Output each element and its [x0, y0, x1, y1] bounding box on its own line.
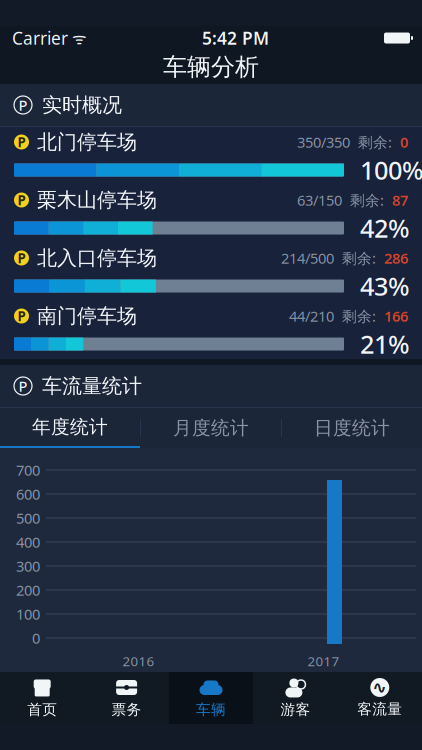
staticText: 100% [360, 153, 422, 187]
staticText: 43% [360, 269, 410, 303]
staticText: 车流量统计 [42, 374, 142, 398]
staticText: 2017 [307, 652, 339, 670]
button[interactable]: 年度统计 [0, 408, 140, 448]
button[interactable]: 月度统计 [141, 408, 281, 448]
staticText: 87 [392, 190, 408, 210]
staticText: 北门停车场 [37, 130, 137, 154]
staticText: 栗木山停车场 [37, 188, 157, 212]
button[interactable]: P [0, 301, 422, 359]
staticText: 21% [360, 327, 410, 361]
staticText: 车辆 [196, 700, 226, 718]
staticText: 北入口停车场 [37, 246, 157, 270]
staticText: P [17, 191, 25, 209]
staticText: P [18, 95, 27, 115]
button[interactable]: 游客 [253, 672, 338, 724]
staticText: 2016 [122, 652, 154, 670]
staticText: ∿ [372, 678, 387, 697]
staticText: 剩余: [350, 190, 384, 210]
staticText: 300 [16, 556, 40, 576]
staticText: 400 [16, 532, 40, 552]
staticText: 44/210 [289, 306, 334, 326]
staticText: 首页 [27, 700, 57, 718]
staticText: P [17, 307, 25, 325]
staticText: 剩余: [342, 248, 376, 268]
staticText: 0 [32, 628, 40, 648]
staticText: P [18, 376, 27, 396]
staticText: 游客 [280, 700, 310, 718]
staticText: 350/350 [297, 132, 350, 152]
staticText: 票务 [112, 700, 142, 718]
staticText: 日度统计 [314, 416, 390, 439]
staticText: 5:42 PM [202, 26, 269, 49]
staticText: 0 [400, 132, 408, 152]
staticText: 214/500 [281, 248, 334, 268]
staticText: 100 [16, 604, 40, 624]
staticText: 700 [16, 460, 40, 480]
button[interactable]: 票务 [84, 672, 169, 724]
staticText: 286 [384, 248, 408, 268]
staticText: 63/150 [297, 190, 342, 210]
staticText: 实时概况 [42, 93, 122, 117]
staticText: 500 [16, 508, 40, 528]
button[interactable]: ∿ [338, 672, 422, 724]
staticText: 客流量 [357, 700, 402, 718]
staticText: 年度统计 [32, 415, 108, 438]
staticText: 剩余: [358, 132, 392, 152]
staticText: 南门停车场 [37, 304, 137, 328]
staticText: 月度统计 [173, 416, 249, 439]
staticText: 200 [16, 580, 40, 600]
staticText: P [17, 133, 25, 151]
button[interactable]: 首页 [0, 672, 84, 724]
staticText: P [17, 249, 25, 267]
staticText: 600 [16, 484, 40, 504]
staticText: 车辆分析 [163, 52, 259, 82]
button[interactable]: P [0, 185, 422, 243]
button[interactable]: 车辆 [169, 672, 253, 724]
staticText: 166 [384, 306, 408, 326]
button[interactable]: 日度统计 [282, 408, 422, 448]
button[interactable]: P [0, 127, 422, 185]
staticText: 剩余: [342, 306, 376, 326]
button[interactable]: P [0, 243, 422, 301]
staticText: ᯤ [68, 27, 87, 49]
staticText: Carrier [12, 26, 68, 49]
staticText: 42% [360, 211, 410, 245]
